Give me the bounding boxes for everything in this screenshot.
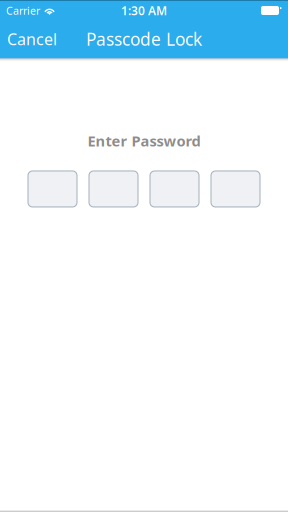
button[interactable]: Passcode digit — [149, 170, 199, 207]
staticText: Enter Password — [87, 131, 200, 150]
staticText: Carrier — [6, 3, 40, 18]
staticText: Cancel — [7, 28, 57, 50]
button[interactable]: Passcode digit — [210, 170, 260, 207]
staticText: 1:30 AM — [121, 2, 167, 18]
button[interactable]: Passcode digit — [88, 170, 138, 207]
button[interactable]: Cancel — [0, 20, 64, 58]
button[interactable]: Passcode digit — [27, 170, 77, 207]
staticText: Passcode Lock — [86, 27, 202, 50]
